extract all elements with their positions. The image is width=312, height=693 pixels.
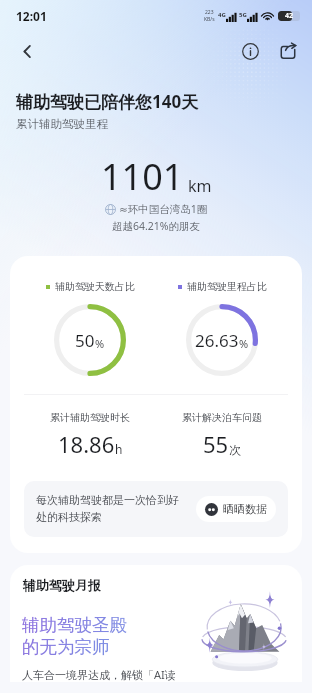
staticText: 辅助驾驶天数占比 xyxy=(55,280,135,293)
staticText: 5G xyxy=(239,11,247,19)
staticText: ≈环中国台湾岛1圈 xyxy=(119,202,208,216)
staticText: 的无为宗师 xyxy=(22,636,110,658)
staticText: 18.86 xyxy=(58,429,115,459)
staticText: 累计辅助驾驶里程 xyxy=(16,117,108,131)
staticText: 50 xyxy=(75,329,95,352)
staticText: 26.63 xyxy=(195,329,239,352)
button[interactable]: Share xyxy=(274,37,302,65)
staticText: 辅助驾驶里程占比 xyxy=(187,280,267,293)
staticText: h xyxy=(115,441,123,457)
staticText: 辅助驾驶圣殿 xyxy=(22,614,127,636)
staticText: 辅助驾驶已陪伴您140天 xyxy=(16,90,199,113)
staticText: 辅助驾驶月报 xyxy=(23,577,101,593)
staticText: KB/s xyxy=(204,16,215,23)
button[interactable]: 晒晒数据 xyxy=(196,496,276,522)
staticText: 累计辅助驾驶时长 xyxy=(50,411,130,424)
staticText: 1101 xyxy=(101,152,184,201)
staticText: 人车合一境界达成，解锁「AI读 xyxy=(22,667,176,682)
staticText: 4G xyxy=(218,11,226,19)
staticText: 累计解决泊车问题 xyxy=(182,411,262,424)
staticText: km xyxy=(188,175,212,197)
button[interactable]: 辅助驾驶圣殿 xyxy=(10,593,302,682)
button[interactable]: Back xyxy=(13,37,41,65)
staticText: % xyxy=(239,336,249,351)
staticText: 次 xyxy=(229,442,241,457)
staticText: 223 xyxy=(205,9,214,16)
button[interactable]: Info xyxy=(236,37,264,65)
staticText: 每次辅助驾驶都是一次恰到好处的科技探索 xyxy=(36,493,188,525)
staticText: % xyxy=(95,336,105,351)
staticText: 42 xyxy=(285,11,294,21)
staticText: 12:01 xyxy=(16,8,47,24)
staticText: 55 xyxy=(203,429,229,459)
staticText: 晒晒数据 xyxy=(223,502,267,516)
staticText: 超越64.21%的朋友 xyxy=(112,219,201,233)
